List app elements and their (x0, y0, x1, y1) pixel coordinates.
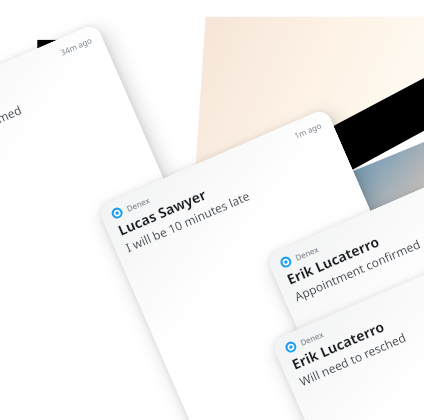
other: Denex app icon (279, 255, 293, 269)
staticText: Denex (125, 194, 152, 214)
staticText: Erik Lucaterro (289, 317, 387, 374)
staticText: 1m ago (292, 119, 323, 141)
staticText: Lucas Sawyer (115, 185, 209, 240)
staticText: Appointment confirmed (0, 101, 24, 170)
other: Denex app icon (110, 206, 124, 220)
other: Denex app icon (284, 340, 298, 354)
staticText: Denex (293, 243, 321, 263)
staticText: Denex (298, 328, 326, 348)
staticText: Erik Lucaterro (284, 232, 382, 289)
staticText: 34m ago (59, 34, 93, 57)
button[interactable]: Denex app icon (270, 254, 424, 420)
staticText: I will be 10 minutes late (123, 187, 252, 255)
button[interactable]: Denex app icon (265, 169, 424, 420)
staticText: Will need to resched (297, 329, 409, 389)
button[interactable]: Denex app icon (0, 23, 263, 420)
staticText: Appointment confirmed (292, 235, 423, 304)
button[interactable]: Denex app icon (97, 108, 424, 420)
